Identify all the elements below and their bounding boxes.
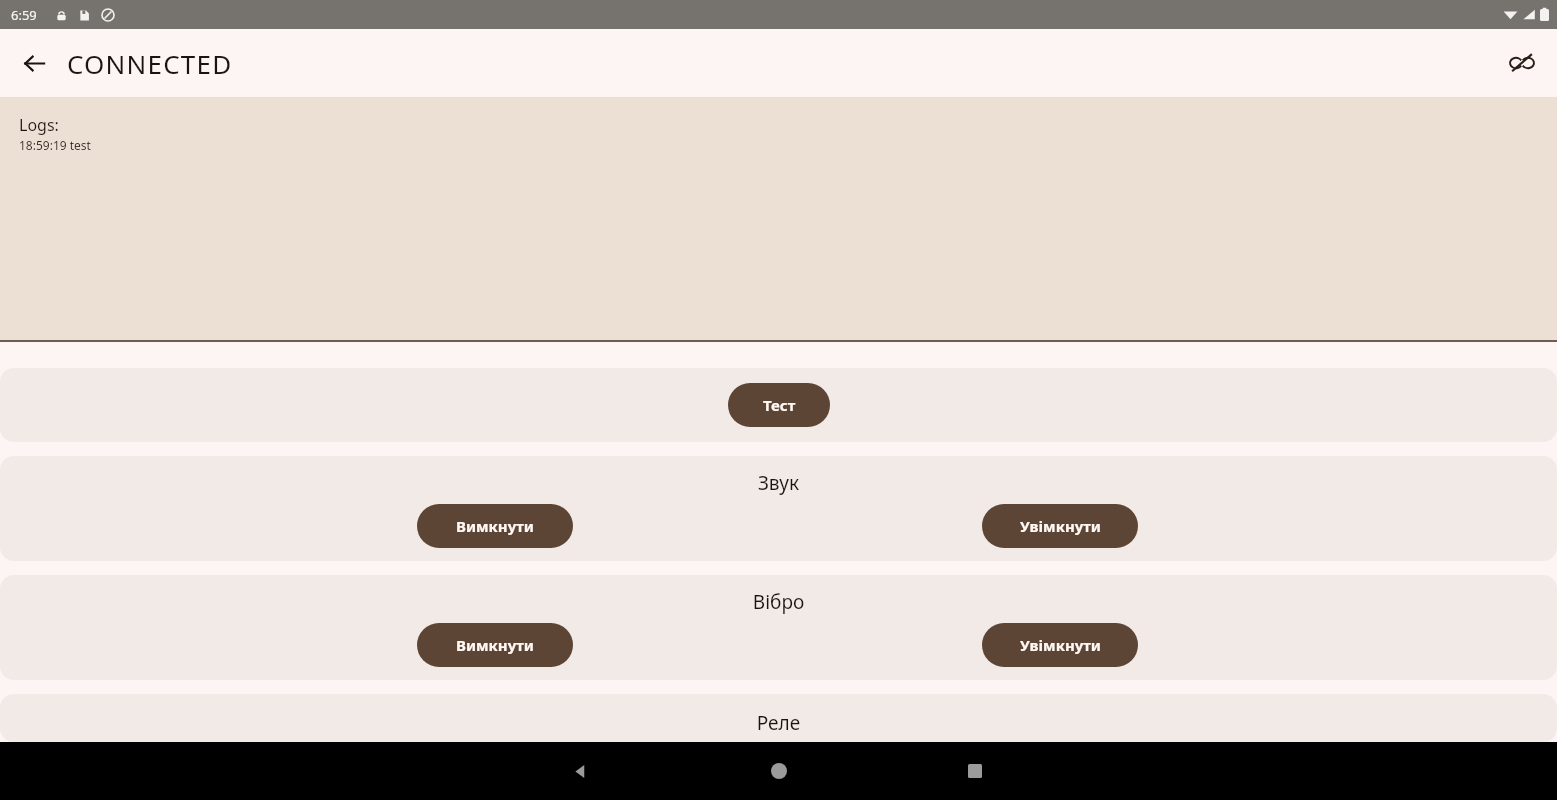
button[interactable]: Увімкнути [982,504,1138,548]
staticText: Увімкнути [1020,516,1101,536]
staticText: CONNECTED [67,46,233,81]
staticText: Реле [0,710,1557,736]
button[interactable]: Disconnect [1499,40,1545,86]
staticText: Тест [763,395,796,415]
staticText: Звук [0,470,1557,496]
button[interactable]: Back [558,749,602,793]
button[interactable]: Home [757,749,801,793]
staticText: Увімкнути [1020,635,1101,655]
button[interactable]: Вимкнути [417,504,573,548]
button[interactable]: Увімкнути [982,623,1138,667]
staticText: Вібро [0,589,1557,615]
button[interactable]: Вимкнути [417,623,573,667]
staticText: Logs: [19,114,59,136]
button[interactable]: Recents [953,749,997,793]
button[interactable]: Back [12,41,56,85]
staticText: Вимкнути [456,635,534,655]
staticText: Вимкнути [456,516,534,536]
button[interactable]: Тест [728,383,830,427]
staticText: 6:59 [11,6,37,24]
staticText: 18:59:19 test [19,137,91,153]
